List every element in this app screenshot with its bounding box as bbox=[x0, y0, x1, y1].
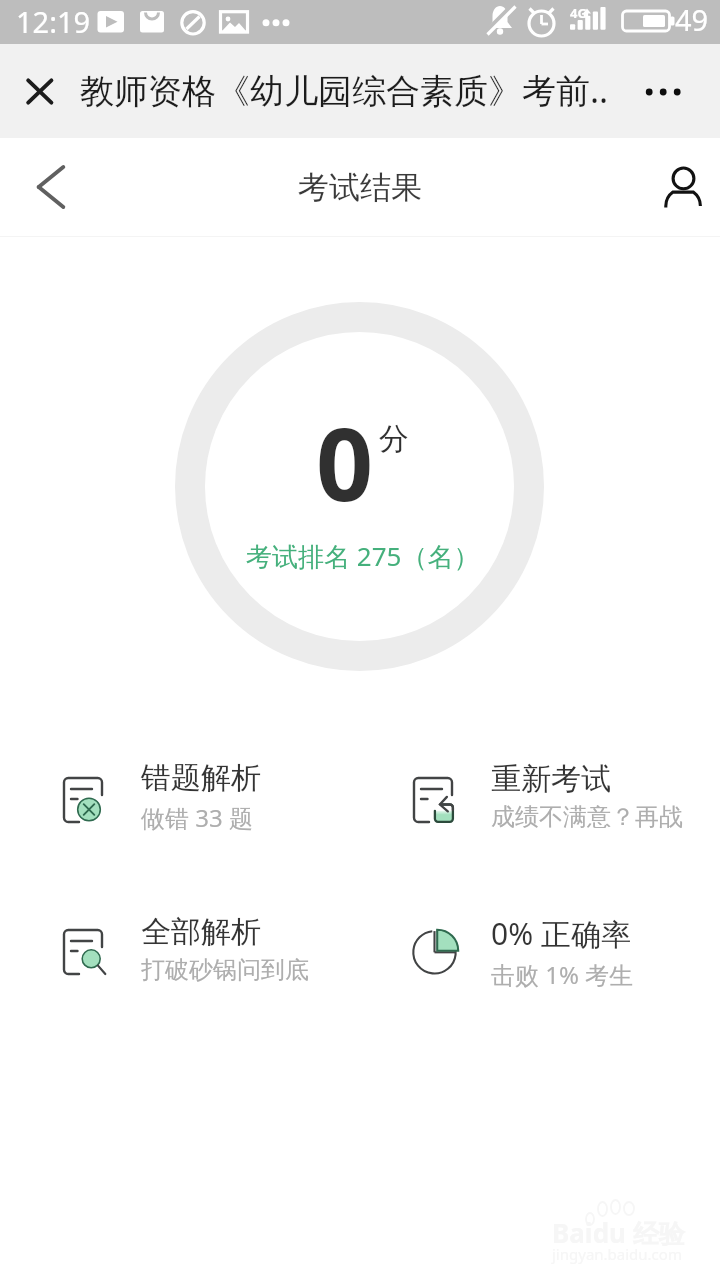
staticText: jingyan.baidu.com bbox=[552, 1244, 682, 1264]
staticText: 0 bbox=[316, 394, 374, 530]
staticText: 考试结果 bbox=[298, 168, 422, 207]
staticText: 49 bbox=[675, 0, 709, 39]
button[interactable]: 错题解析 bbox=[44, 755, 344, 847]
staticText: 12:19 bbox=[16, 2, 91, 41]
staticText: 打破砂锅问到底 bbox=[141, 955, 309, 985]
button[interactable]: Back bbox=[10, 138, 92, 237]
staticText: 4G bbox=[570, 4, 587, 22]
staticText: 做错 33 题 bbox=[141, 801, 253, 834]
staticText: 全部解析 bbox=[141, 913, 261, 951]
button[interactable]: 0% 正确率 bbox=[394, 907, 694, 999]
staticText: Baidu 经验 bbox=[552, 1215, 685, 1251]
button[interactable]: 全部解析 bbox=[44, 907, 344, 999]
staticText: 考试排名 275（名） bbox=[246, 538, 480, 574]
button[interactable]: More options bbox=[624, 44, 702, 138]
button[interactable]: 重新考试 bbox=[394, 755, 694, 847]
button[interactable]: Profile bbox=[644, 138, 720, 237]
staticText: 错题解析 bbox=[141, 759, 261, 797]
staticText: 0% 正确率 bbox=[491, 913, 631, 954]
staticText: 重新考试 bbox=[491, 760, 611, 798]
staticText: 击败 1% 考生 bbox=[491, 958, 634, 991]
button[interactable]: Close bbox=[4, 44, 76, 138]
staticText: 教师资格《幼儿园综合素质》考前.. bbox=[80, 67, 609, 113]
staticText: 分 bbox=[379, 420, 409, 458]
staticText: 成绩不满意？再战 bbox=[491, 802, 683, 832]
